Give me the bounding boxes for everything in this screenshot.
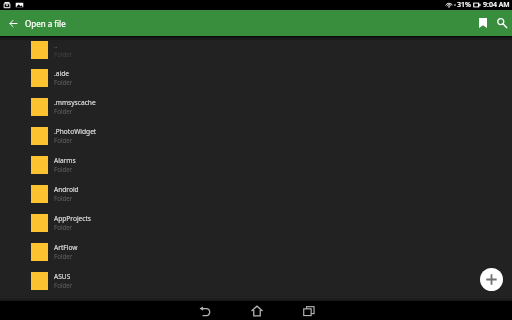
staticText: .mmsyscache xyxy=(54,98,96,107)
staticText: Folder xyxy=(54,281,73,289)
staticText: Folder xyxy=(54,136,73,144)
button[interactable]: .mmsyscache xyxy=(0,93,512,122)
staticText: Folder xyxy=(54,78,73,86)
button[interactable]: Android xyxy=(0,180,512,209)
staticText: Open a file xyxy=(25,18,66,29)
button[interactable]: Recents xyxy=(299,301,318,320)
button[interactable]: Back xyxy=(195,301,214,320)
button[interactable]: Bookmarks xyxy=(472,12,494,34)
button[interactable]: ASUS xyxy=(0,267,512,296)
staticText: Folder xyxy=(54,50,73,58)
staticText: Folder xyxy=(54,223,73,231)
staticText: Folder xyxy=(54,252,73,260)
staticText: Folder xyxy=(54,165,73,173)
staticText: ArtFlow xyxy=(54,243,78,252)
button[interactable]: Alarms xyxy=(0,151,512,180)
staticText: Folder xyxy=(54,194,73,202)
staticText: AppProjects xyxy=(54,214,92,223)
staticText: .. xyxy=(54,41,58,50)
button[interactable]: Home xyxy=(247,301,266,320)
staticText: Folder xyxy=(54,107,73,115)
staticText: 31% xyxy=(457,0,471,10)
staticText: Alarms xyxy=(54,156,76,165)
staticText: .PhotoWidget xyxy=(54,127,97,136)
staticText: Android xyxy=(54,185,79,194)
staticText: 9:04 AM xyxy=(483,0,510,10)
button[interactable]: Back xyxy=(3,13,23,33)
button[interactable]: .. xyxy=(0,36,512,65)
button[interactable]: AppProjects xyxy=(0,209,512,238)
button[interactable]: .PhotoWidget xyxy=(0,122,512,151)
staticText: ASUS xyxy=(54,272,71,281)
button[interactable]: Add xyxy=(480,268,503,291)
button[interactable]: ArtFlow xyxy=(0,238,512,267)
button[interactable]: Search xyxy=(491,12,512,34)
staticText: .aide xyxy=(54,69,69,78)
button[interactable]: .aide xyxy=(0,64,512,93)
